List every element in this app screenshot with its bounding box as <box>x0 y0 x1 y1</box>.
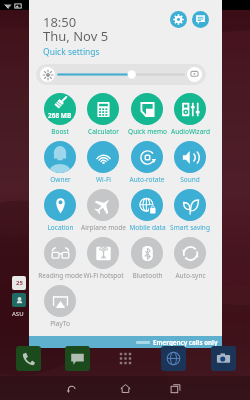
staticText: 18:50 <box>43 13 77 31</box>
button[interactable] <box>58 70 184 79</box>
staticText: Wi-Fi hotspot <box>83 271 124 280</box>
button[interactable]: Owner <box>44 141 76 173</box>
button[interactable]: Airplane mode <box>87 189 119 221</box>
button[interactable]: AudioWizard <box>174 93 206 125</box>
button[interactable]: Bluetooth <box>131 237 163 269</box>
staticText: Emergency calls only <box>153 338 218 346</box>
button[interactable]: Reading mode <box>44 237 76 269</box>
staticText: ASU <box>12 310 24 318</box>
staticText: Mobile data <box>129 223 166 232</box>
button[interactable]: Smart saving <box>174 189 206 221</box>
button[interactable]: Auto brightness <box>187 67 202 82</box>
button[interactable]: Back <box>60 377 82 399</box>
staticText: Quick settings <box>43 46 100 58</box>
button[interactable]: Settings <box>170 11 187 28</box>
button[interactable]: Camera <box>211 346 236 371</box>
staticText: 25 <box>16 279 23 287</box>
button[interactable]: PlayTo <box>44 285 76 317</box>
staticText: Quick memo <box>128 127 167 136</box>
staticText: Auto-rotate <box>129 175 165 184</box>
staticText: Location <box>47 223 74 232</box>
staticText: Wi-Fi <box>96 175 111 184</box>
staticText: Thu, Nov 5 <box>43 27 109 45</box>
staticText: Owner <box>50 175 71 184</box>
staticText: AudioWizard <box>171 127 210 136</box>
staticText: Airplane mode <box>81 223 126 232</box>
button[interactable]: Location <box>44 189 76 221</box>
button[interactable]: Auto-sync <box>174 237 206 269</box>
button[interactable]: Home <box>114 377 136 399</box>
button[interactable]: Boost <box>44 93 76 125</box>
staticText: Auto-sync <box>175 271 206 280</box>
button[interactable]: Brightness <box>40 67 55 82</box>
staticText: Sound <box>180 175 200 184</box>
button[interactable]: Notifications <box>192 11 209 28</box>
button[interactable]: Auto-rotate <box>131 141 163 173</box>
staticText: Bluetooth <box>132 271 163 280</box>
button[interactable]: Wi-Fi hotspot <box>87 237 119 269</box>
button[interactable]: Messages <box>65 346 90 371</box>
staticText: Calculator <box>88 127 119 136</box>
button[interactable]: Mobile data <box>131 189 163 221</box>
button[interactable]: Wi-Fi <box>87 141 119 173</box>
staticText: Boost <box>51 127 69 136</box>
button[interactable]: Sound <box>174 141 206 173</box>
staticText: Smart saving <box>170 223 210 232</box>
button[interactable]: Recents <box>164 377 186 399</box>
button[interactable]: Phone <box>16 346 41 371</box>
staticText: 268 MB <box>48 111 72 120</box>
button[interactable]: Quick memo <box>131 93 163 125</box>
button[interactable]: Apps <box>113 346 138 371</box>
button[interactable]: Calculator <box>87 93 119 125</box>
staticText: PlayTo <box>50 319 70 328</box>
staticText: Reading mode <box>38 271 83 280</box>
button[interactable]: Browser <box>161 346 186 371</box>
